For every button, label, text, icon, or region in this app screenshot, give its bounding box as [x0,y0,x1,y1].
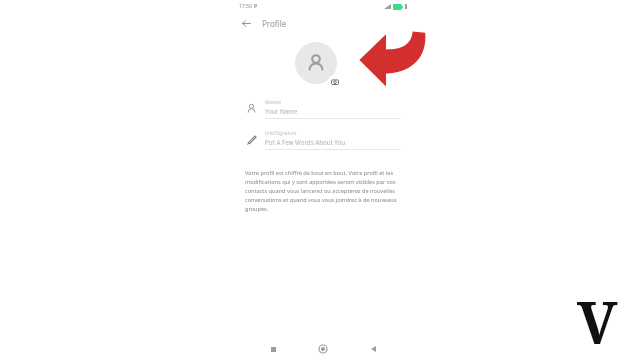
staticText: Info/Signature [265,130,297,136]
button[interactable]: Maman [236,97,410,121]
staticText: Maman [265,99,282,105]
staticText: Profile [262,18,287,29]
button[interactable]: Back [236,13,256,33]
button[interactable]: Back [360,339,386,359]
staticText: 17:50 [239,3,252,10]
button[interactable]: Change profile photo [295,42,341,88]
staticText: V [577,282,618,360]
button[interactable]: Recent apps [260,339,286,359]
staticText: Your Name [265,107,298,115]
staticText: Put A Few Words About You [265,138,346,146]
button[interactable]: Home [310,339,336,359]
staticText: Votre profil est chiffré de bout en bout… [245,169,401,213]
button[interactable]: Info/Signature [236,128,410,152]
staticText: P [254,3,258,10]
